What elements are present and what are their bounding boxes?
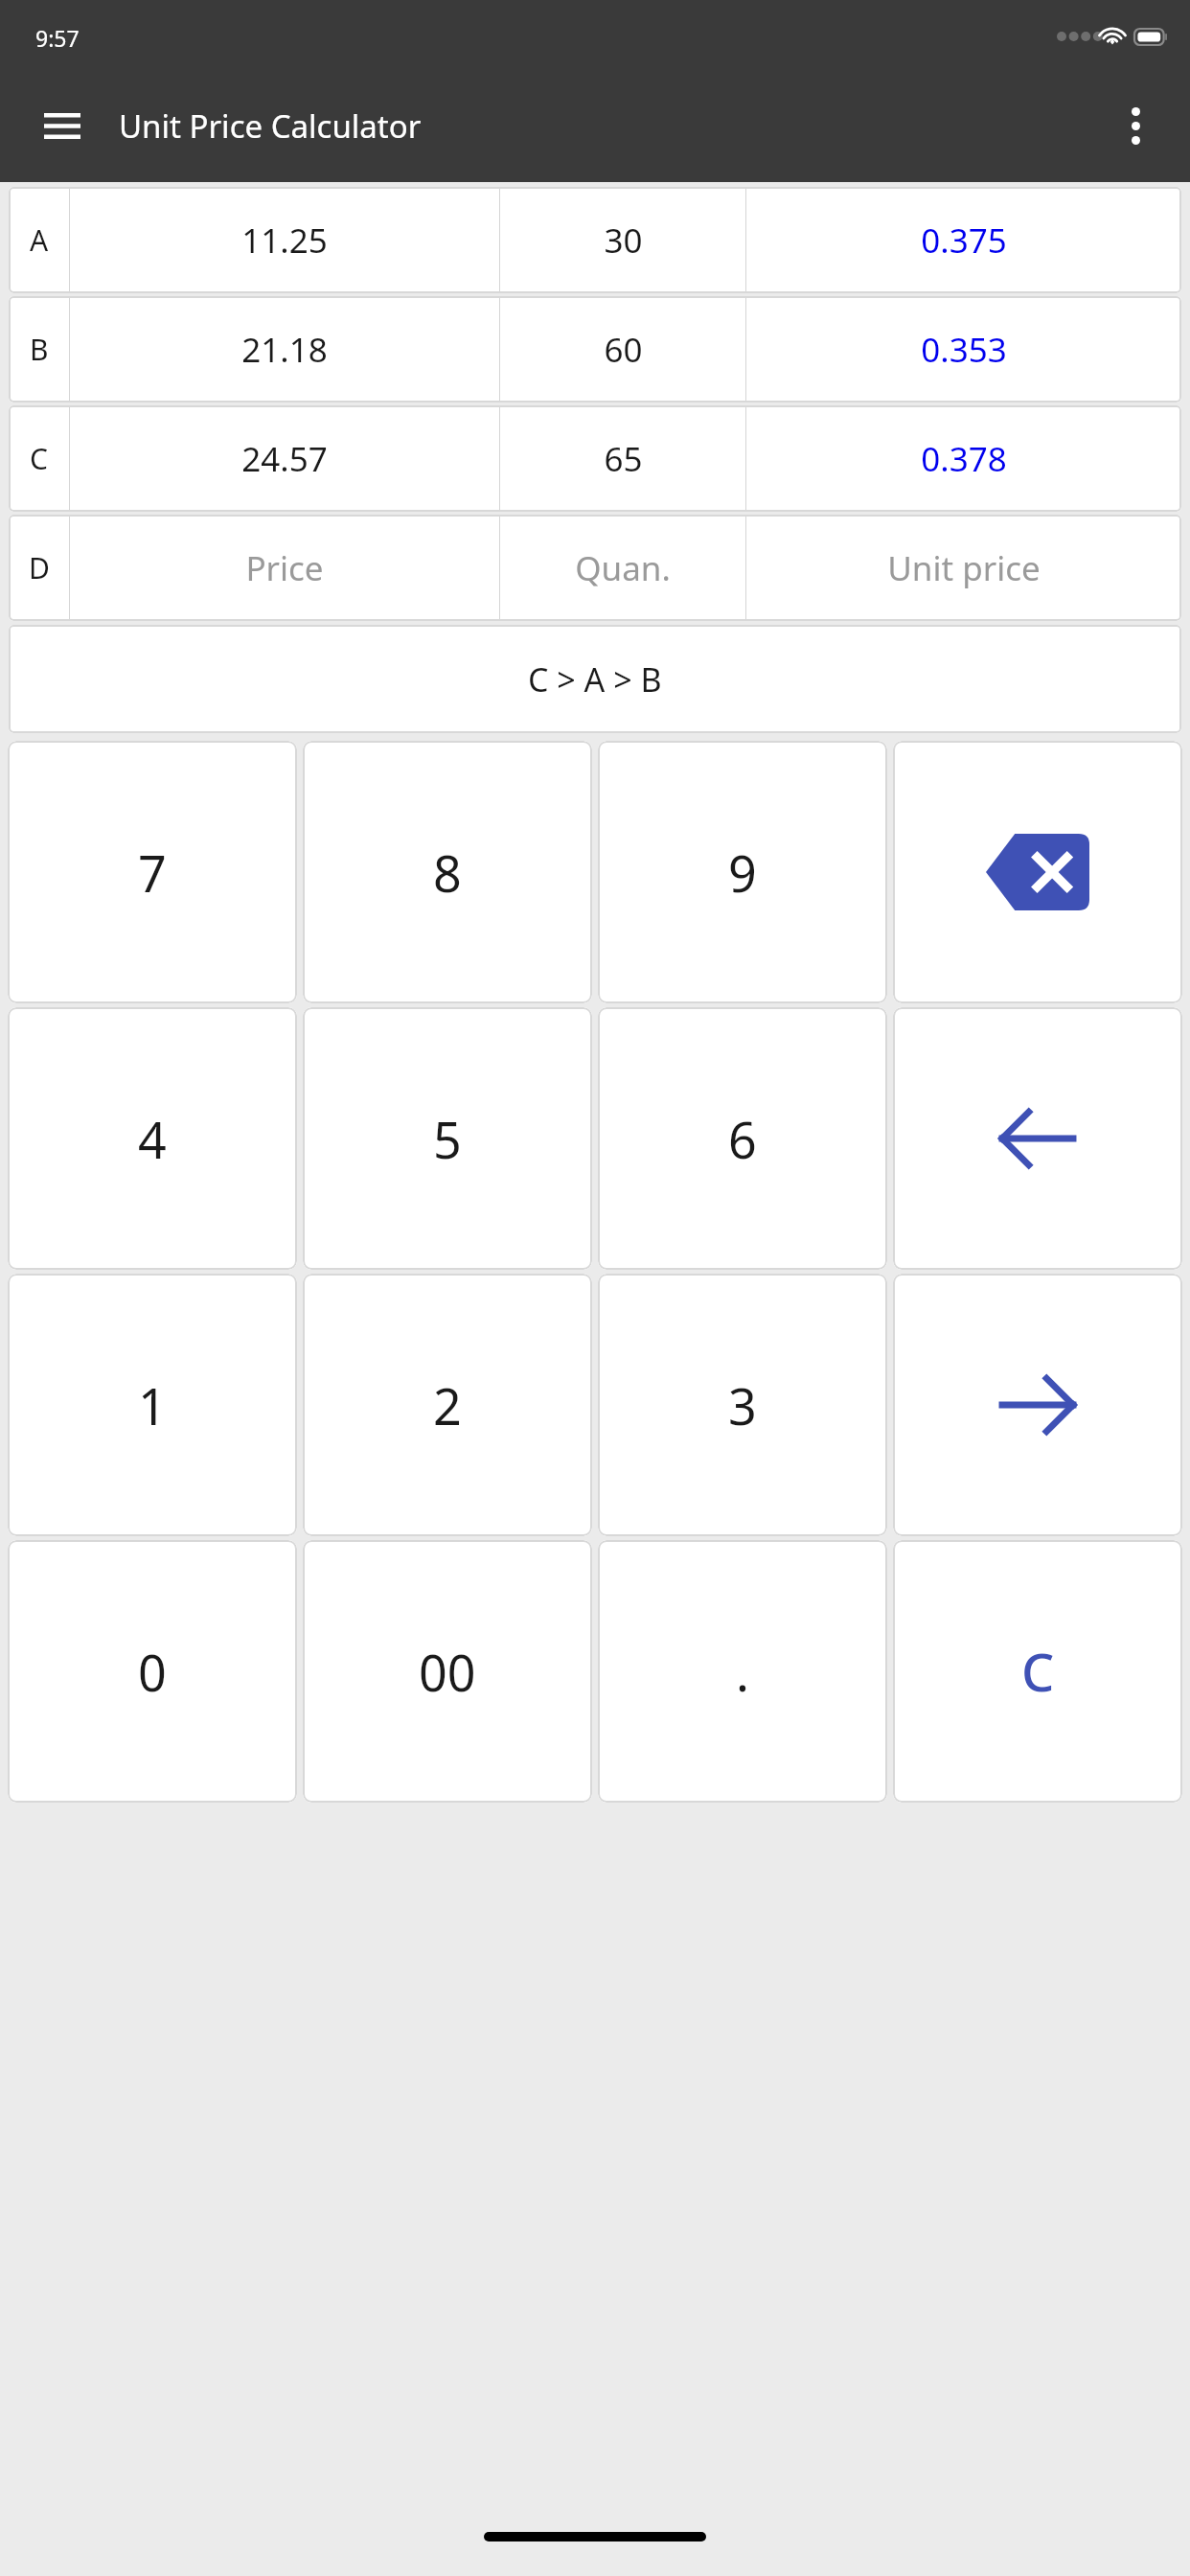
- staticText: 0.353: [921, 327, 1007, 373]
- staticText: 6: [728, 1105, 757, 1173]
- button[interactable]: More options: [1102, 92, 1169, 159]
- button[interactable]: 9: [598, 741, 887, 1003]
- button[interactable]: 65: [500, 405, 745, 512]
- button[interactable]: 21.18: [70, 296, 499, 402]
- staticText: 7: [138, 839, 167, 907]
- staticText: C > A > B: [528, 657, 662, 701]
- button[interactable]: Next field: [893, 1274, 1182, 1536]
- button[interactable]: Quan.: [500, 515, 745, 621]
- button[interactable]: 60: [500, 296, 745, 402]
- staticText: 60: [604, 327, 643, 373]
- button[interactable]: 00: [303, 1540, 592, 1803]
- staticText: 2: [433, 1371, 462, 1439]
- staticText: 11.25: [241, 218, 328, 264]
- staticText: Unit Price Calculator: [119, 104, 422, 148]
- button[interactable]: 11.25: [70, 187, 499, 293]
- button[interactable]: Previous field: [893, 1007, 1182, 1270]
- staticText: 9:57: [35, 23, 80, 53]
- button[interactable]: 7: [8, 741, 297, 1003]
- staticText: Price: [245, 545, 324, 591]
- staticText: Unit price: [887, 545, 1041, 591]
- staticText: 00: [419, 1638, 476, 1706]
- staticText: 0.378: [921, 436, 1007, 482]
- button[interactable]: 3: [598, 1274, 887, 1536]
- button[interactable]: Price: [70, 515, 499, 621]
- button[interactable]: 0.353: [746, 296, 1181, 402]
- button[interactable]: .: [598, 1540, 887, 1803]
- button[interactable]: Unit price: [746, 515, 1181, 621]
- staticText: A: [30, 220, 49, 260]
- staticText: 30: [604, 218, 643, 264]
- staticText: D: [29, 548, 50, 587]
- staticText: 65: [604, 436, 643, 482]
- button[interactable]: 8: [303, 741, 592, 1003]
- staticText: Quan.: [575, 545, 671, 591]
- staticText: 4: [138, 1105, 167, 1173]
- staticText: 21.18: [241, 327, 328, 373]
- button[interactable]: 2: [303, 1274, 592, 1536]
- staticText: .: [736, 1638, 749, 1706]
- staticText: 8: [433, 839, 462, 907]
- button[interactable]: 24.57: [70, 405, 499, 512]
- button[interactable]: 6: [598, 1007, 887, 1270]
- button[interactable]: 0: [8, 1540, 297, 1803]
- staticText: 9: [728, 839, 757, 907]
- button[interactable]: 0.375: [746, 187, 1181, 293]
- button[interactable]: 4: [8, 1007, 297, 1270]
- staticText: 0.375: [921, 218, 1007, 264]
- button[interactable]: 5: [303, 1007, 592, 1270]
- staticText: 3: [728, 1371, 757, 1439]
- staticText: C: [1021, 1636, 1055, 1707]
- staticText: C: [30, 439, 48, 478]
- button[interactable]: C: [893, 1540, 1182, 1803]
- button[interactable]: 1: [8, 1274, 297, 1536]
- button[interactable]: C > A > B: [9, 625, 1181, 733]
- button[interactable]: 30: [500, 187, 745, 293]
- staticText: 5: [433, 1105, 462, 1173]
- staticText: 0: [138, 1638, 167, 1706]
- staticText: 24.57: [241, 436, 328, 482]
- button[interactable]: Backspace: [893, 741, 1182, 1003]
- button[interactable]: 0.378: [746, 405, 1181, 512]
- staticText: B: [30, 330, 49, 369]
- staticText: 1: [138, 1371, 167, 1439]
- button[interactable]: Menu: [29, 92, 96, 159]
